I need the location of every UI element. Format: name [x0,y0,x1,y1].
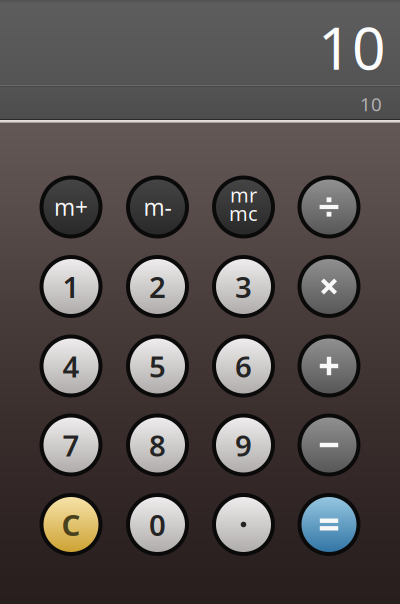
button[interactable]: clear [39,493,102,556]
button[interactable]: 4 [39,334,102,397]
staticText: 5 [149,346,166,385]
button[interactable]: 6 [212,334,275,397]
button[interactable]: 1 [39,255,102,318]
staticText: 9 [235,425,252,464]
button[interactable]: 8 [126,413,189,476]
staticText: 1 [62,267,79,306]
staticText: 10 [360,92,382,116]
staticText: mc [229,200,258,227]
button[interactable]: memory add [39,175,102,238]
button[interactable]: equals [297,493,360,556]
button[interactable]: 5 [126,334,189,397]
button[interactable]: multiply [297,255,360,318]
staticText: 3 [235,267,252,306]
staticText: 10 [318,8,386,86]
button[interactable]: 0 [126,493,189,556]
staticText: m+ [54,192,88,222]
button[interactable]: 3 [212,255,275,318]
staticText: 0 [149,505,166,544]
staticText: C [61,505,80,544]
button[interactable]: memory recall, memory clear [212,175,275,238]
staticText: m- [143,192,171,222]
button[interactable]: decimal point [212,493,275,556]
staticText: 2 [149,267,166,306]
button[interactable]: 7 [39,413,102,476]
button[interactable]: memory subtract [126,175,189,238]
button[interactable]: 9 [212,413,275,476]
button[interactable]: 2 [126,255,189,318]
staticText: 8 [149,425,166,464]
button[interactable]: minus [297,413,360,476]
staticText: mr [230,181,257,208]
button[interactable]: divide [297,175,360,238]
staticText: 7 [62,425,79,464]
button[interactable]: plus [297,334,360,397]
staticText: 6 [235,346,252,385]
staticText: 4 [62,346,79,385]
